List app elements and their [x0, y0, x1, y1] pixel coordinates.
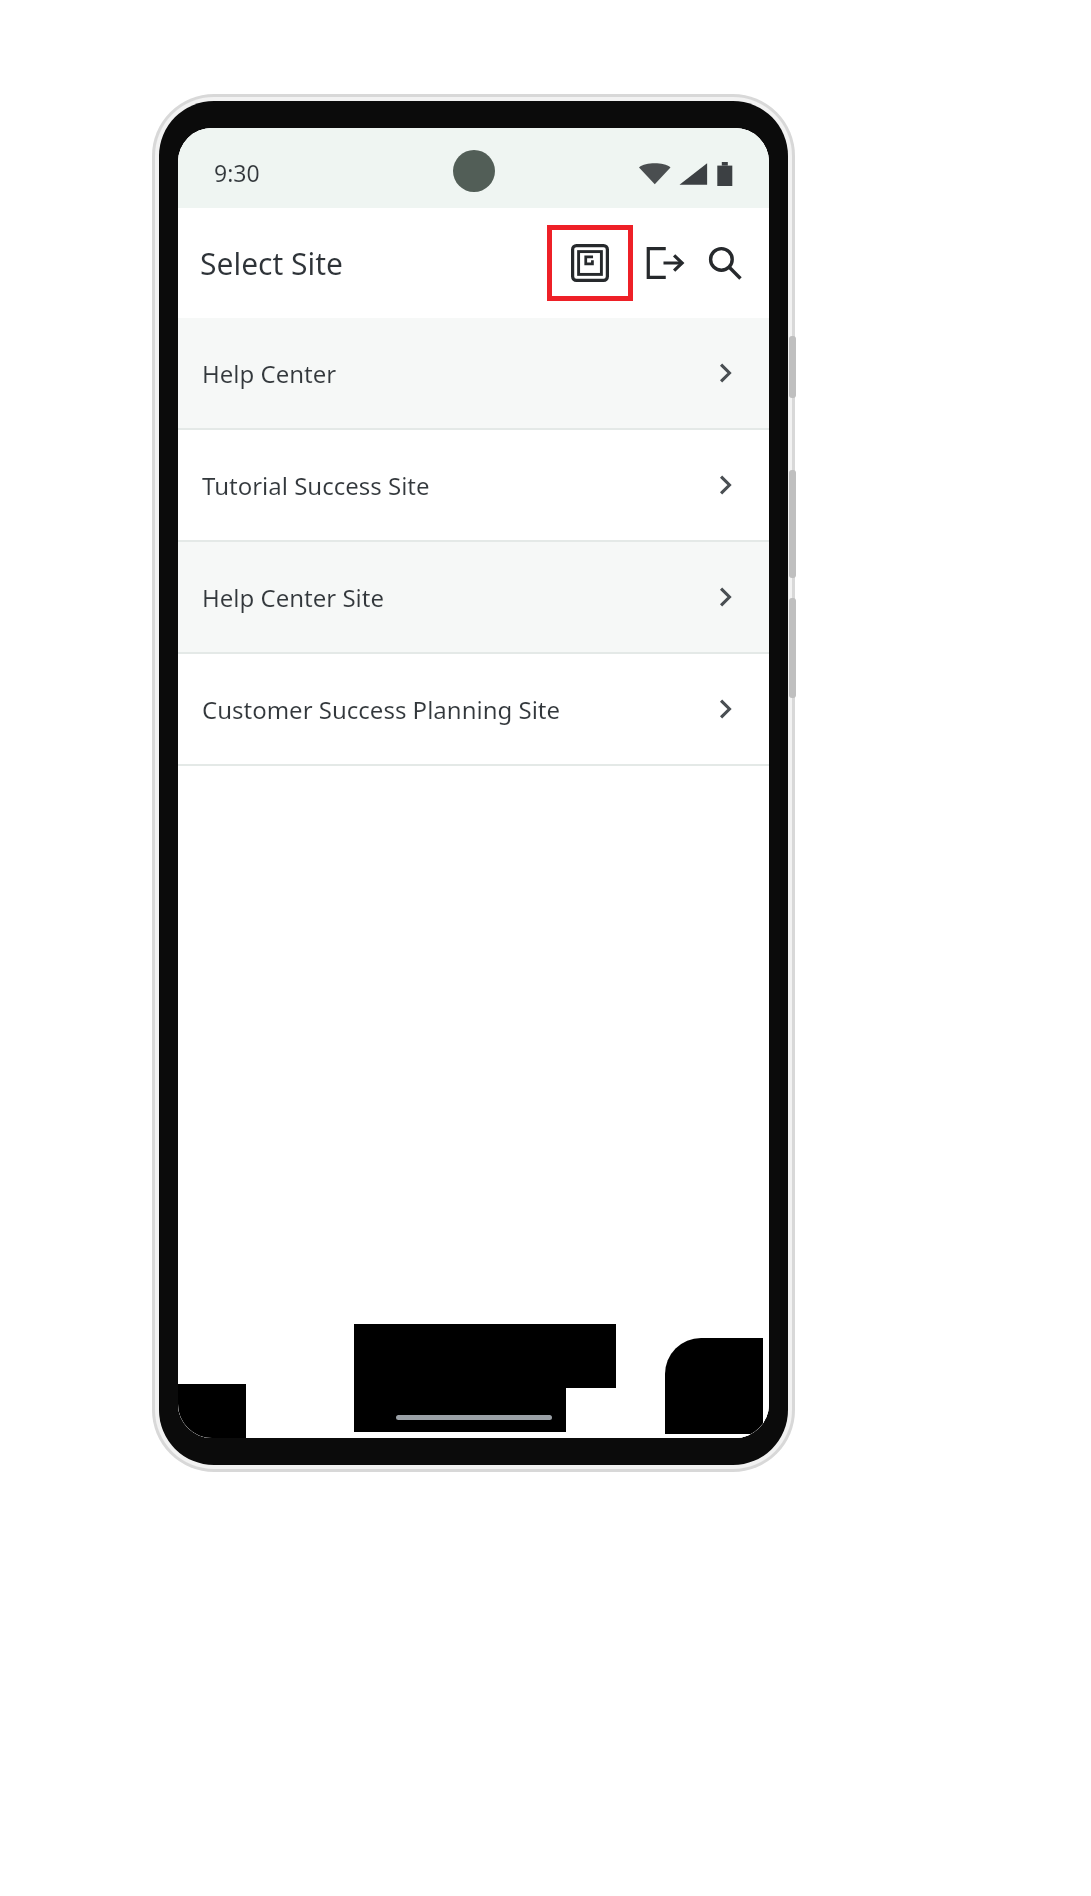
button[interactable]: Customer Success Planning Site	[178, 654, 769, 764]
button[interactable]: Search	[699, 237, 751, 289]
staticText: Tutorial Success Site	[202, 469, 711, 502]
button[interactable]: Scan QR code	[564, 237, 616, 289]
button[interactable]: Tutorial Success Site	[178, 430, 769, 540]
staticText: 9:30	[214, 157, 260, 188]
staticText: Help Center	[202, 357, 711, 390]
button[interactable]: Help Center	[178, 318, 769, 428]
button[interactable]: Log out	[639, 237, 691, 289]
button[interactable]: Help Center Site	[178, 542, 769, 652]
staticText: Help Center Site	[202, 581, 711, 614]
staticText: Select Site	[200, 243, 344, 284]
staticText: Customer Success Planning Site	[202, 693, 711, 726]
